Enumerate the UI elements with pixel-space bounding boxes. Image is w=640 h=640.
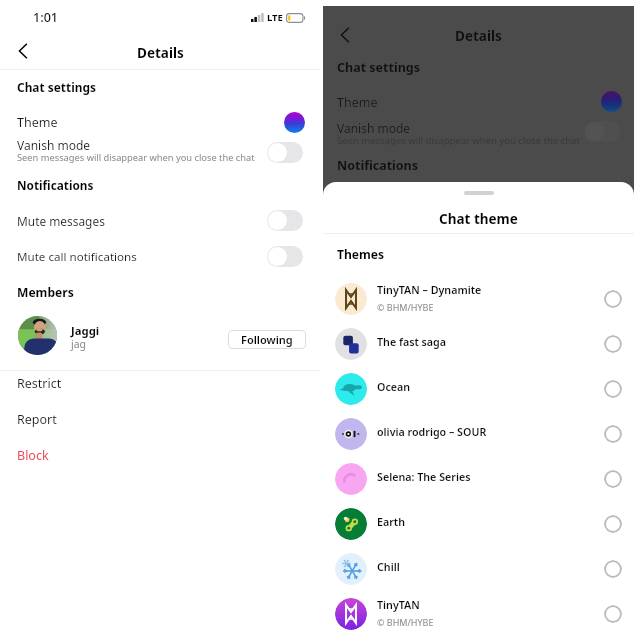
staticText: Selena: The Series bbox=[377, 470, 471, 485]
staticText: Notifications bbox=[17, 177, 94, 193]
staticText: jag bbox=[71, 337, 87, 351]
button[interactable]: Toggle bbox=[267, 210, 303, 231]
staticText: TinyTAN – Dynamite bbox=[377, 283, 482, 298]
button[interactable]: Restrict bbox=[0, 365, 320, 401]
staticText: Restrict bbox=[17, 375, 62, 392]
staticText: © BHM/HYBE bbox=[377, 616, 434, 628]
button[interactable]: Chill bbox=[323, 547, 634, 592]
button[interactable]: Back bbox=[12, 42, 36, 60]
button[interactable]: Select The fast saga bbox=[604, 335, 622, 353]
button[interactable]: Vanish mode bbox=[0, 134, 320, 168]
staticText: © BHM/HYBE bbox=[377, 301, 434, 313]
staticText: Seen messages will disappear when you cl… bbox=[337, 134, 580, 147]
staticText: Ocean bbox=[377, 380, 411, 395]
button[interactable]: TinyTAN – Dynamite bbox=[323, 277, 634, 322]
staticText: olivia rodrigo – SOUR bbox=[377, 425, 487, 440]
staticText: Vanish mode bbox=[337, 120, 411, 136]
staticText: Following bbox=[241, 332, 293, 347]
staticText: Details bbox=[455, 27, 502, 45]
button[interactable]: Selena: The Series bbox=[323, 457, 634, 502]
staticText: LTE bbox=[267, 11, 283, 24]
staticText: Earth bbox=[377, 515, 406, 530]
staticText: The fast saga bbox=[377, 335, 446, 350]
button[interactable]: Select TinyTAN – Dynamite bbox=[604, 290, 622, 308]
staticText: Details bbox=[137, 44, 184, 62]
button[interactable]: Ocean bbox=[323, 367, 634, 412]
staticText: Mute call notifications bbox=[17, 249, 137, 265]
staticText: Themes bbox=[337, 246, 385, 262]
button[interactable]: TinyTAN bbox=[323, 592, 634, 637]
button[interactable]: Mute call notifications bbox=[0, 242, 320, 270]
staticText: Theme bbox=[17, 114, 58, 131]
staticText: TinyTAN bbox=[377, 598, 420, 613]
staticText: Block bbox=[17, 447, 49, 464]
button[interactable]: Select Ocean bbox=[604, 380, 622, 398]
staticText: Chat theme bbox=[439, 210, 518, 228]
staticText: Theme bbox=[337, 94, 378, 111]
staticText: Report bbox=[17, 411, 57, 428]
button[interactable]: Back bbox=[334, 26, 358, 44]
staticText: Chat settings bbox=[337, 59, 420, 76]
staticText: Seen messages will disappear when you cl… bbox=[17, 151, 255, 164]
button[interactable]: Select TinyTAN bbox=[604, 605, 622, 623]
button[interactable]: olivia rodrigo – SOUR bbox=[323, 412, 634, 457]
staticText: Jaggi bbox=[71, 323, 100, 338]
button[interactable]: Jaggi bbox=[0, 312, 320, 360]
staticText: Members bbox=[17, 284, 74, 300]
button[interactable]: Theme bbox=[0, 106, 320, 134]
button[interactable]: Block bbox=[0, 437, 320, 473]
button[interactable]: Mute messages bbox=[0, 206, 320, 234]
button[interactable]: Earth bbox=[323, 502, 634, 547]
button[interactable]: Toggle bbox=[267, 246, 303, 267]
button[interactable]: Select olivia rodrigo – SOUR bbox=[604, 425, 622, 443]
staticText: 1:01 bbox=[33, 9, 59, 26]
button[interactable]: Toggle bbox=[267, 142, 303, 163]
button[interactable]: Report bbox=[0, 401, 320, 437]
button[interactable]: Select Earth bbox=[604, 515, 622, 533]
staticText: Mute messages bbox=[17, 213, 105, 229]
button[interactable]: Following bbox=[228, 330, 306, 349]
staticText: Vanish mode bbox=[17, 137, 91, 153]
button[interactable]: The fast saga bbox=[323, 322, 634, 367]
button[interactable]: Select Selena: The Series bbox=[604, 470, 622, 488]
staticText: Chill bbox=[377, 560, 400, 575]
staticText: Notifications bbox=[337, 157, 419, 174]
staticText: Chat settings bbox=[17, 79, 96, 95]
button[interactable]: Select Chill bbox=[604, 560, 622, 578]
